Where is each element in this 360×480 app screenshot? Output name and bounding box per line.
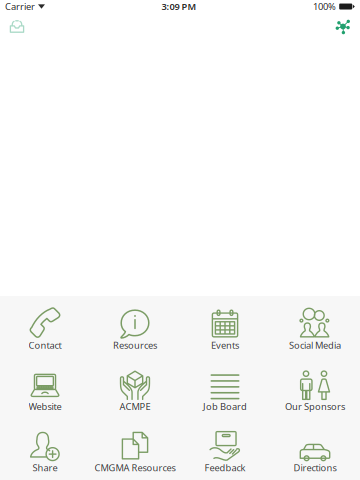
button[interactable]: Our Sponsors: [270, 357, 360, 419]
staticText: Our Sponsors: [285, 400, 345, 412]
staticText: Share: [32, 461, 57, 474]
staticText: CMGMA Resources: [94, 461, 175, 474]
staticText: Carrier: [5, 0, 35, 13]
staticText: Resources: [113, 339, 157, 351]
button[interactable]: Job Board: [180, 357, 270, 419]
button[interactable]: CMGMA Resources: [90, 419, 180, 480]
staticText: Social Media: [289, 339, 341, 351]
button[interactable]: Share: [0, 419, 90, 480]
button[interactable]: Inbox: [0, 13, 34, 40]
button[interactable]: Share: [326, 13, 360, 40]
staticText: Website: [28, 400, 61, 412]
button[interactable]: Contact: [0, 296, 90, 357]
button[interactable]: Events: [180, 296, 270, 357]
staticText: Feedback: [204, 461, 245, 474]
button[interactable]: ACMPE: [90, 357, 180, 419]
staticText: Contact: [28, 339, 61, 351]
staticText: ACMPE: [119, 400, 150, 412]
button[interactable]: Social Media: [270, 296, 360, 357]
staticText: 100%: [313, 0, 336, 13]
staticText: Directions: [293, 461, 336, 474]
staticText: Events: [211, 339, 239, 351]
button[interactable]: Resources: [90, 296, 180, 357]
button[interactable]: Directions: [270, 419, 360, 480]
button[interactable]: Website: [0, 357, 90, 419]
button[interactable]: Feedback: [180, 419, 270, 480]
staticText: 3:09 PM: [161, 0, 196, 13]
staticText: Job Board: [203, 400, 247, 412]
